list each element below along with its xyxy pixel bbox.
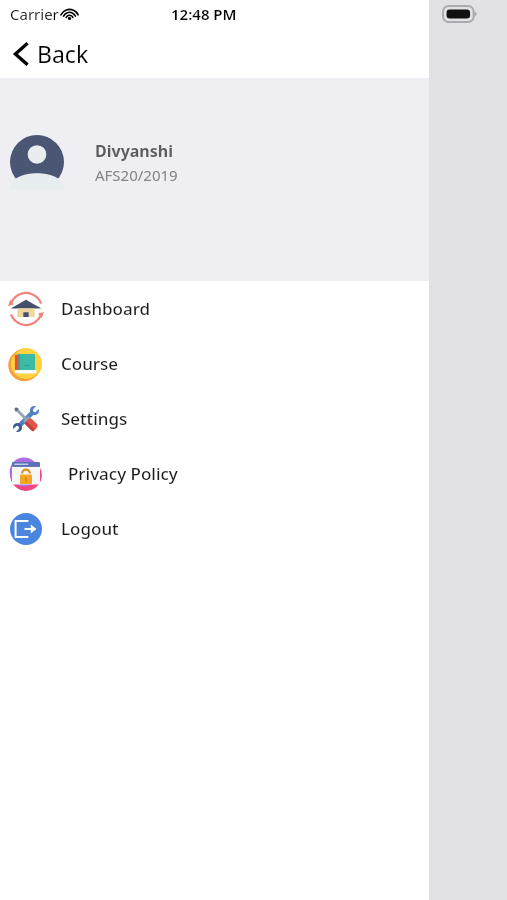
staticText: Back bbox=[37, 38, 89, 69]
staticText: 12:48 PM bbox=[171, 4, 237, 24]
staticText: Dashboard bbox=[61, 297, 151, 320]
staticText: Privacy Policy bbox=[68, 462, 178, 485]
staticText: Carrier bbox=[10, 4, 59, 24]
button[interactable]: Course bbox=[0, 336, 429, 391]
staticText: Divyanshi bbox=[95, 140, 173, 162]
staticText: Course bbox=[61, 352, 119, 375]
staticText: AFS20/2019 bbox=[95, 165, 178, 185]
button[interactable]: Logout bbox=[0, 501, 429, 556]
staticText: Settings bbox=[61, 407, 128, 430]
staticText: Logout bbox=[61, 517, 119, 540]
button[interactable]: Settings bbox=[0, 391, 429, 446]
button[interactable]: Privacy Policy bbox=[0, 446, 429, 501]
button[interactable]: Back bbox=[0, 34, 103, 73]
button[interactable]: Dashboard bbox=[0, 281, 429, 336]
